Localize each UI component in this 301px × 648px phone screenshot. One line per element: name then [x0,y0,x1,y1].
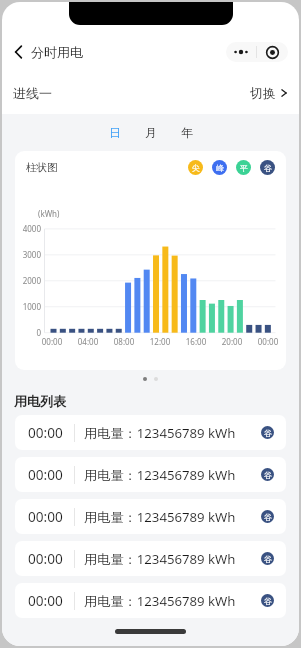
staticText: (kWh) [38,208,60,219]
button[interactable]: 00:00 [15,583,286,618]
staticText: 12:00 [146,336,174,347]
staticText: 08:00 [110,336,138,347]
staticText: 00:00 [28,591,63,610]
staticText: 切换 [250,85,276,101]
button[interactable]: 谷 [261,594,274,607]
button[interactable]: 谷 [260,160,275,175]
staticText: 1000 [15,301,41,312]
staticText: 谷 [264,512,272,522]
staticText: 16:00 [182,336,210,347]
staticText: 谷 [264,596,272,606]
staticText: 20:00 [218,336,246,347]
staticText: 00:00 [28,423,63,442]
staticText: 尖 [192,163,200,173]
staticText: 00:00 [28,507,63,526]
button[interactable]: 日 [103,121,127,144]
button[interactable]: 谷 [261,426,274,439]
staticText: 0 [15,327,41,338]
staticText: 用电量：123456789 kWh [84,424,236,442]
staticText: 00:00 [28,549,63,568]
button[interactable]: 00:00 [15,541,286,576]
staticText: 3000 [15,249,41,260]
staticText: 平 [240,163,248,173]
button[interactable]: 00:00 [15,415,286,450]
staticText: 进线一 [13,85,52,101]
staticText: 月 [145,125,157,140]
button[interactable]: 月 [139,121,163,144]
staticText: 年 [181,125,193,140]
staticText: 用电量：123456789 kWh [84,508,236,526]
staticText: 用电量：123456789 kWh [84,466,236,484]
staticText: 04:00 [74,336,102,347]
other: Close [257,42,288,62]
button[interactable]: 谷 [261,510,274,523]
other: Menu [226,42,256,62]
button[interactable]: 进线一 [2,72,299,114]
button[interactable]: 尖 [188,160,203,175]
staticText: 00:00 [28,465,63,484]
staticText: 谷 [264,554,272,564]
staticText: 谷 [264,428,272,438]
button[interactable]: 谷 [261,552,274,565]
button[interactable]: 峰 [212,160,227,175]
button[interactable]: Back [10,40,87,64]
other: Back [14,45,23,59]
staticText: 00:00 [254,336,282,347]
staticText: 谷 [264,470,272,480]
staticText: 峰 [216,163,224,173]
button[interactable]: 年 [175,121,199,144]
staticText: 用电列表 [14,393,66,409]
staticText: 用电量：123456789 kWh [84,550,236,568]
staticText: 00:00 [38,336,66,347]
button[interactable]: 00:00 [15,499,286,534]
button[interactable]: 00:00 [15,457,286,492]
staticText: 2000 [15,275,41,286]
staticText: 谷 [264,163,272,173]
button[interactable]: 平 [236,160,251,175]
staticText: 日 [109,125,121,140]
staticText: 用电量：123456789 kWh [84,592,236,610]
staticText: 分时用电 [31,44,83,60]
staticText: 4000 [15,223,41,234]
button[interactable]: 谷 [261,468,274,481]
staticText: 柱状图 [26,161,58,174]
button[interactable]: Menu [226,42,288,62]
